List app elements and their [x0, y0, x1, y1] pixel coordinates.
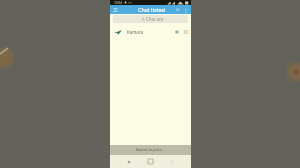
staticText: Chat listesi: [138, 6, 166, 13]
staticText: Kanal seçiniz...: [136, 147, 165, 153]
button[interactable]: Kanal seçiniz...: [110, 145, 191, 155]
staticText: Chat ara: [146, 16, 164, 22]
button[interactable]: Home: [143, 155, 157, 168]
button[interactable]: Search: [174, 6, 182, 14]
button[interactable]: More options: [182, 6, 190, 14]
staticText: 10:54: [114, 1, 123, 5]
button[interactable]: Kamara: [110, 24, 191, 39]
button[interactable]: Chat options: [181, 27, 190, 36]
button[interactable]: Chat ara: [113, 15, 188, 23]
button[interactable]: Recent apps: [122, 155, 136, 168]
button[interactable]: Navigation menu: [111, 5, 120, 14]
staticText: Kamara: [127, 29, 143, 35]
button[interactable]: Edit chat: [172, 27, 181, 36]
